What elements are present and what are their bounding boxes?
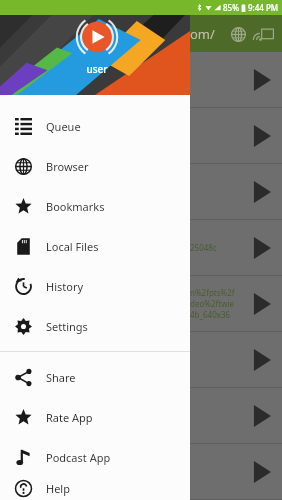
button[interactable]: Podcast App [0,437,190,477]
staticText: Browser [46,159,89,174]
staticText: Local Files [46,239,99,254]
button[interactable]: Browser [227,23,249,45]
button[interactable]: Play [240,108,282,163]
button[interactable]: Play [0,388,282,443]
button[interactable]: Play [240,220,282,275]
button[interactable]: 25048c [0,220,282,275]
button[interactable]: n%2fpts%2f [0,276,282,331]
button[interactable]: Play [240,388,282,443]
staticText: Podcast App [46,450,111,465]
button[interactable]: Play [240,276,282,331]
staticText: Share [46,370,76,385]
button[interactable]: Help [0,477,190,500]
button[interactable]: Play [0,164,282,219]
button[interactable]: Rate App [0,397,190,437]
staticText: 4b_640x36 [190,309,231,320]
staticText: Rate App [46,410,93,425]
button[interactable]: Play [240,332,282,387]
staticText: 85% [223,2,239,13]
staticText: om/ [190,25,215,43]
staticText: 9:44 PM [248,2,279,13]
button[interactable]: Cast [259,23,274,45]
button[interactable]: Play [240,52,282,107]
staticText: 25048c [190,242,217,253]
button[interactable]: Play [240,164,282,219]
button[interactable]: Play [240,444,282,499]
staticText: History [46,279,84,294]
button[interactable]: Play [0,332,282,387]
button[interactable]: Browser [0,146,190,186]
button[interactable]: Queue [0,106,190,146]
staticText: user [78,62,116,76]
button[interactable]: Play [0,444,282,499]
button[interactable]: Play [0,108,282,163]
staticText: Bookmarks [46,199,105,214]
staticText: deo%2ftwie [190,298,234,309]
button[interactable]: Share [0,357,190,397]
button[interactable]: Bookmarks [0,186,190,226]
button[interactable]: Local Files [0,226,190,266]
staticText: Queue [46,119,81,134]
staticText: Settings [46,319,88,334]
button[interactable]: History [0,266,190,306]
staticText: n%2fpts%2f [190,287,235,298]
other: App logo [78,18,116,56]
staticText: Help [46,481,70,496]
button[interactable]: Play [0,52,282,107]
button[interactable]: Settings [0,306,190,346]
